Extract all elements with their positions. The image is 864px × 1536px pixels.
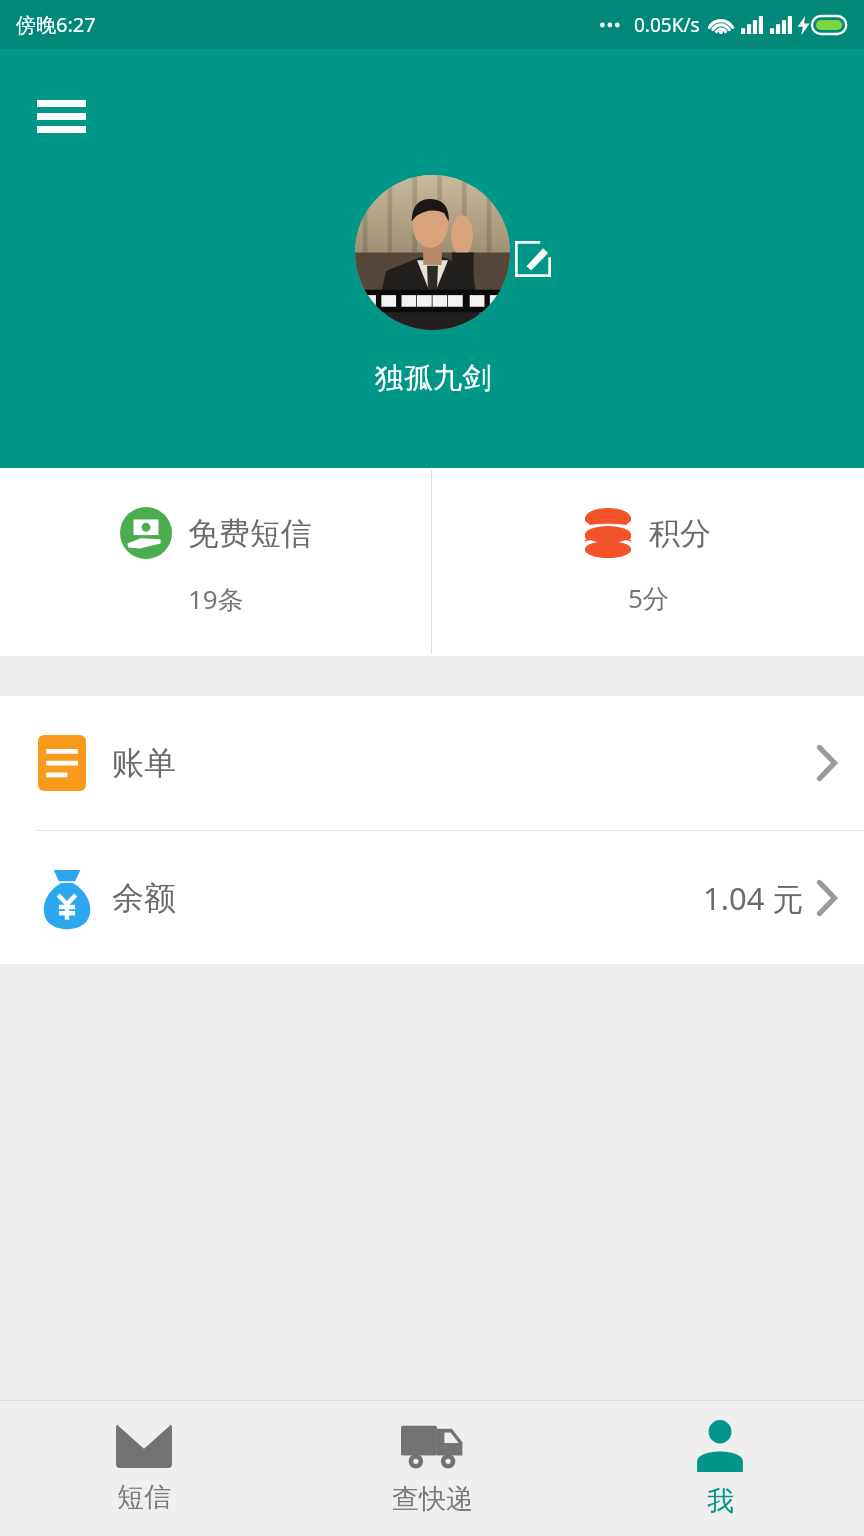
staticText: 积分 bbox=[649, 514, 711, 553]
staticText: 19条 bbox=[188, 581, 244, 617]
staticText: 独孤九剑 bbox=[375, 360, 491, 397]
button[interactable]: 积分 bbox=[432, 468, 864, 656]
button[interactable]: Edit profile bbox=[508, 234, 558, 284]
staticText: 1.04 元 bbox=[703, 877, 804, 919]
button[interactable]: Avatar bbox=[355, 175, 510, 330]
button[interactable]: 账单 bbox=[0, 696, 864, 830]
staticText: 傍晚6:27 bbox=[16, 11, 96, 38]
staticText: 5分 bbox=[628, 580, 669, 616]
staticText: 0.05K/s bbox=[634, 12, 700, 38]
staticText: 查快递 bbox=[392, 1482, 473, 1516]
button[interactable]: 余额 bbox=[0, 831, 864, 964]
staticText: 余额 bbox=[112, 878, 176, 918]
button[interactable]: 我 bbox=[576, 1401, 864, 1536]
staticText: 我 bbox=[707, 1484, 734, 1518]
button[interactable]: Menu bbox=[30, 85, 92, 147]
staticText: 免费短信 bbox=[188, 514, 312, 553]
button[interactable]: 免费短信 bbox=[0, 468, 431, 656]
staticText: 账单 bbox=[112, 743, 176, 783]
staticText: 短信 bbox=[117, 1480, 171, 1514]
button[interactable]: 查快递 bbox=[288, 1401, 576, 1536]
button[interactable]: 短信 bbox=[0, 1401, 288, 1536]
